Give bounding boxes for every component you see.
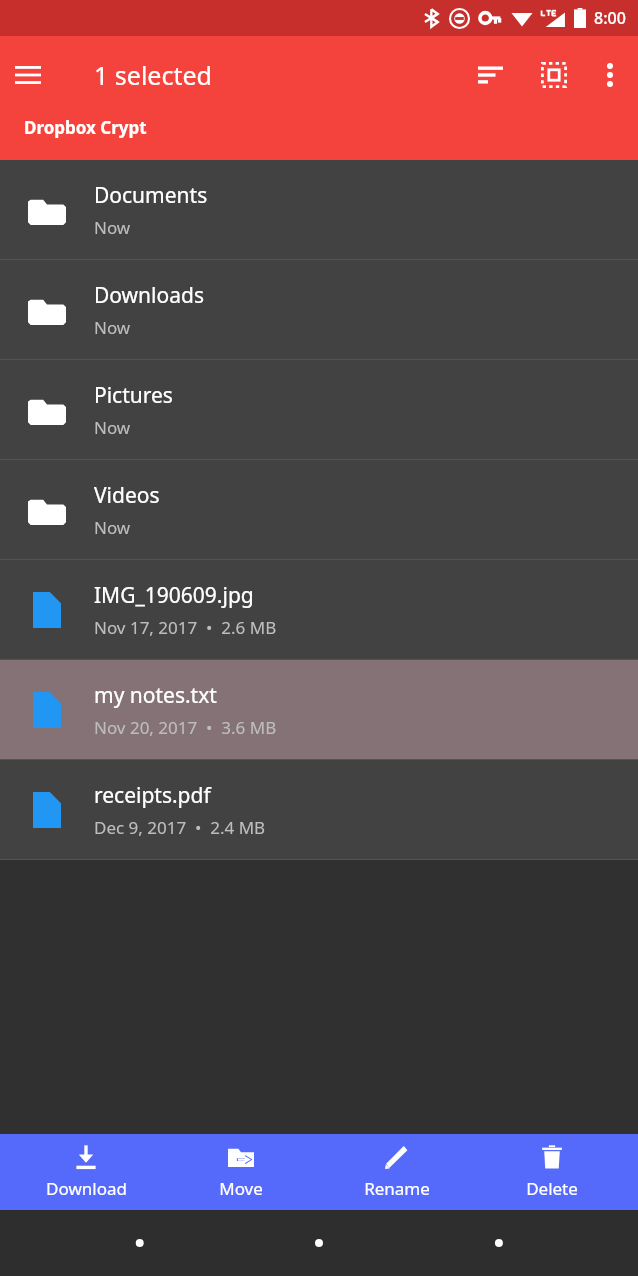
button[interactable]: receipts.pdf [0,760,638,860]
staticText: Delete [526,1177,578,1200]
button[interactable]: my notes.txt [0,660,638,760]
staticText: receipts.pdf [94,781,211,810]
staticText: Nov 20, 2017 • 3.6 MB [94,716,277,739]
staticText: IMG_190609.jpg [94,581,254,610]
staticText: Documents [94,181,208,210]
button[interactable]: Documents [0,160,638,260]
staticText: Downloads [94,281,204,310]
button[interactable]: Sort [462,47,518,103]
button[interactable]: Pictures [0,360,638,460]
staticText: Nov 17, 2017 • 2.6 MB [94,616,277,639]
button[interactable]: Download [16,1134,156,1210]
button[interactable]: Rename [327,1134,467,1210]
button[interactable]: Downloads [0,260,638,360]
staticText: my notes.txt [94,681,217,710]
staticText: Now [94,416,131,439]
staticText: Dec 9, 2017 • 2.4 MB [94,816,266,839]
button[interactable]: Select all [526,47,582,103]
staticText: Videos [94,481,160,510]
button[interactable]: More options [582,47,638,103]
staticText: Now [94,316,131,339]
staticText: Now [94,516,131,539]
staticText: Pictures [94,381,173,410]
staticText: Download [46,1177,127,1200]
staticText: Rename [364,1177,430,1200]
staticText: Now [94,216,131,239]
staticText: Dropbox Crypt [24,116,147,139]
button[interactable]: Videos [0,460,638,560]
button[interactable]: Navigation menu [0,47,56,103]
button[interactable]: Move [171,1134,311,1210]
button[interactable]: IMG_190609.jpg [0,560,638,660]
staticText: 8:00 [594,7,626,29]
button[interactable]: Delete [482,1134,622,1210]
staticText: Move [219,1177,263,1200]
staticText: 1 selected [94,58,212,92]
